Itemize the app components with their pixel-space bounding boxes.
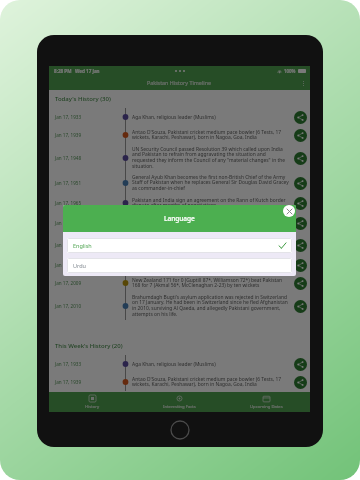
- staticText: Jan 17, 1939: [55, 379, 119, 385]
- button[interactable]: English: [67, 238, 292, 253]
- staticText: Interesting Facts: [163, 404, 196, 410]
- staticText: Zulfikar Ali Bhutto nationalises ten cat…: [132, 214, 289, 232]
- staticText: Antao D'Souza, Pakistani cricket medium …: [132, 376, 289, 388]
- staticText: Jan 17, 1999: [55, 262, 119, 268]
- staticText: Jan 17, 1933: [55, 114, 119, 120]
- button[interactable]: Share: [294, 300, 307, 313]
- button[interactable]: Share: [294, 129, 307, 142]
- staticText: Urdu: [73, 262, 86, 269]
- staticText: New Zealand 171 for 0 (Guptill 87*, Will…: [132, 277, 289, 289]
- button[interactable]: Jan 17, 2009: [49, 274, 310, 292]
- staticText: Today's History (30): [55, 95, 111, 103]
- button[interactable]: Share: [294, 259, 307, 272]
- button[interactable]: Jan 17, 2010: [49, 292, 310, 320]
- staticText: General Ayub Khan becomes the first non-…: [132, 174, 289, 192]
- button[interactable]: Jan 17, 1965: [49, 194, 310, 212]
- staticText: Aga Khan, religious leader (Muslims): [132, 361, 289, 368]
- staticText: Jan 17, 2010: [55, 303, 119, 309]
- button[interactable]: Jan 17, 1933: [49, 108, 310, 126]
- button[interactable]: Share: [294, 358, 307, 371]
- staticText: Brahumdagh Bugti's asylum application wa…: [132, 294, 289, 318]
- staticText: Pakistan beat India by 16 runs in the fo…: [132, 236, 289, 254]
- staticText: Jan 17, 1948: [55, 155, 119, 161]
- button[interactable]: Share: [294, 152, 307, 165]
- button[interactable]: Jan 17, 1939: [49, 373, 310, 391]
- staticText: Jan 17, 1987: [55, 242, 119, 248]
- staticText: Language: [164, 214, 195, 223]
- staticText: Pakistan History Timeline: [147, 79, 212, 86]
- staticText: Antao D'Souza, Pakistani cricket medium …: [132, 129, 289, 141]
- button[interactable]: Jan 17, 1999: [49, 256, 310, 274]
- staticText: Aga Khan, religious leader (Muslims): [132, 114, 289, 121]
- button[interactable]: Jan 17, 1972: [49, 212, 310, 234]
- button[interactable]: Urdu: [67, 258, 292, 273]
- button[interactable]: Interesting Facts: [136, 392, 223, 412]
- button[interactable]: Jan 17, 1933: [49, 355, 310, 373]
- button[interactable]: Upcoming Dates: [223, 392, 310, 412]
- button[interactable]: Jan 17, 1987: [49, 234, 310, 256]
- staticText: Upcoming Dates: [250, 404, 283, 410]
- button[interactable]: Jan 17, 1951: [49, 172, 310, 194]
- button[interactable]: Jan 17, 1939: [49, 126, 310, 144]
- staticText: 100%: [284, 68, 296, 74]
- staticText: Pakistan and India sign an agreement on …: [132, 197, 289, 209]
- button[interactable]: More options: [296, 76, 310, 90]
- staticText: 8:28 PM Wed 17 Jan: [54, 68, 100, 74]
- button[interactable]: History: [49, 392, 136, 412]
- button[interactable]: Close: [283, 205, 295, 217]
- staticText: English: [73, 242, 92, 249]
- button[interactable]: Share: [294, 197, 307, 210]
- button[interactable]: Share: [294, 376, 307, 389]
- staticText: Jan 17, 1972: [55, 220, 119, 226]
- staticText: Jan 17, 1939: [55, 132, 119, 138]
- staticText: Jan 17, 1951: [55, 180, 119, 186]
- staticText: Jan 17, 1933: [55, 361, 119, 367]
- button[interactable]: Share: [294, 239, 307, 252]
- button[interactable]: Jan 17, 1948: [49, 144, 310, 172]
- button[interactable]: Share: [294, 111, 307, 124]
- button[interactable]: Share: [294, 177, 307, 190]
- staticText: Jan 17, 2009: [55, 280, 119, 286]
- staticText: This Week's History (20): [55, 342, 123, 350]
- staticText: Jan 17, 1965: [55, 200, 119, 206]
- staticText: History: [85, 404, 100, 410]
- button[interactable]: Share: [294, 277, 307, 290]
- staticText: UN Security Council passed Resolution 39…: [132, 146, 289, 170]
- button[interactable]: Share: [294, 217, 307, 230]
